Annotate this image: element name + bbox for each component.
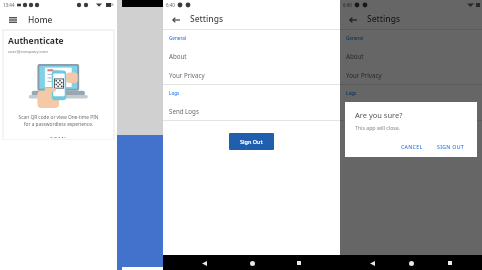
staticText: Logs <box>346 90 357 96</box>
staticText: Authenticate <box>8 35 64 47</box>
staticText: 98% <box>106 2 114 7</box>
button[interactable]: Your Privacy <box>163 65 340 84</box>
button[interactable]: Back <box>169 13 182 26</box>
button[interactable]: About <box>163 46 340 65</box>
button[interactable]: About <box>340 46 482 65</box>
staticText: General <box>169 35 187 41</box>
button[interactable]: Back <box>346 13 359 26</box>
staticText: About <box>346 52 364 60</box>
staticText: 13:44 <box>3 2 15 8</box>
staticText: Send Logs <box>169 107 199 115</box>
staticText: for a passwordless experience. <box>8 121 109 128</box>
staticText: SIGN OUT <box>437 143 465 150</box>
button[interactable]: Sign Out <box>389 133 434 150</box>
staticText: Scan QR code or view One-time PIN <box>8 114 109 121</box>
button[interactable]: Recent apps <box>292 256 306 270</box>
button[interactable]: Recent apps <box>443 256 457 270</box>
staticText: SCAN <box>50 135 67 138</box>
staticText: Home <box>28 14 53 26</box>
button[interactable]: Home <box>404 256 418 270</box>
button[interactable]: Back <box>365 256 379 270</box>
staticText: Your Privacy <box>169 71 205 79</box>
button[interactable]: Back <box>197 256 211 270</box>
staticText: Are you sure? <box>355 110 403 120</box>
staticText: Settings <box>367 13 401 25</box>
button[interactable]: SCAN <box>40 133 77 140</box>
staticText: user@company.com <box>8 49 48 55</box>
staticText: CANCEL <box>401 143 423 150</box>
staticText: 6:40 <box>166 2 175 8</box>
button[interactable]: Open navigation menu <box>6 13 20 27</box>
button[interactable]: Sign Out <box>229 133 274 150</box>
button[interactable]: CANCEL <box>397 141 427 152</box>
staticText: About <box>169 52 187 60</box>
staticText: Send Logs <box>346 107 376 115</box>
button[interactable]: Send Logs <box>340 101 482 120</box>
staticText: Your Privacy <box>346 71 382 79</box>
staticText: General <box>346 35 364 41</box>
staticText: Settings <box>190 13 224 25</box>
staticText: This app will close. <box>355 124 401 131</box>
staticText: Sign Out <box>240 138 263 145</box>
button[interactable]: Send Logs <box>163 101 340 120</box>
staticText: 6:40 <box>343 2 352 8</box>
button[interactable]: SIGN OUT <box>433 141 469 152</box>
button[interactable]: Your Privacy <box>340 65 482 84</box>
button[interactable]: Home <box>245 256 259 270</box>
staticText: Logs <box>169 90 180 96</box>
